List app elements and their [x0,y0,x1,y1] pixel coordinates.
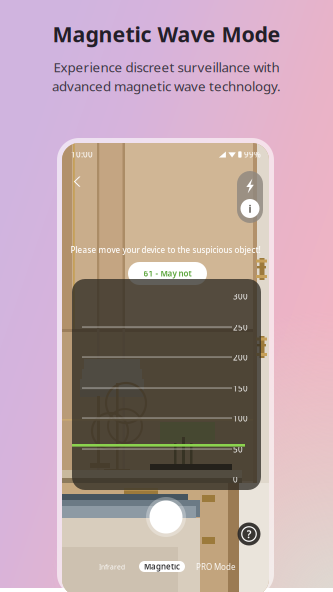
button[interactable]: Info [240,199,259,218]
staticText: Infrared [99,563,125,571]
staticText: 61 - May not [143,268,191,279]
button[interactable]: Flash [237,174,263,198]
staticText: 0 [233,474,238,485]
staticText: Magnetic [144,561,180,572]
button[interactable]: Back [69,173,86,190]
staticText: 300 [233,291,248,302]
button[interactable]: Infrared [88,558,136,576]
staticText: Please move your device to the suspiciou… [70,245,260,255]
staticText: 50 [233,444,243,455]
staticText: 100 [233,413,248,424]
staticText: 200 [233,352,248,363]
button[interactable]: Capture [146,497,186,537]
staticText: i [248,201,251,216]
staticText: 150 [233,383,248,394]
button[interactable]: Help [237,522,261,546]
staticText: 99% [244,149,261,160]
staticText: PRO Mode [196,562,236,572]
button[interactable]: PRO Mode [190,558,242,576]
staticText: Experience discreet surveillance with [53,58,279,76]
button[interactable]: Magnetic [139,561,185,572]
staticText: Magnetic Wave Mode [52,20,280,48]
staticText: ? [246,527,251,541]
staticText: advanced magnetic wave technology. [52,77,281,95]
staticText: 250 [233,322,248,333]
staticText: 10:00 [71,149,93,160]
